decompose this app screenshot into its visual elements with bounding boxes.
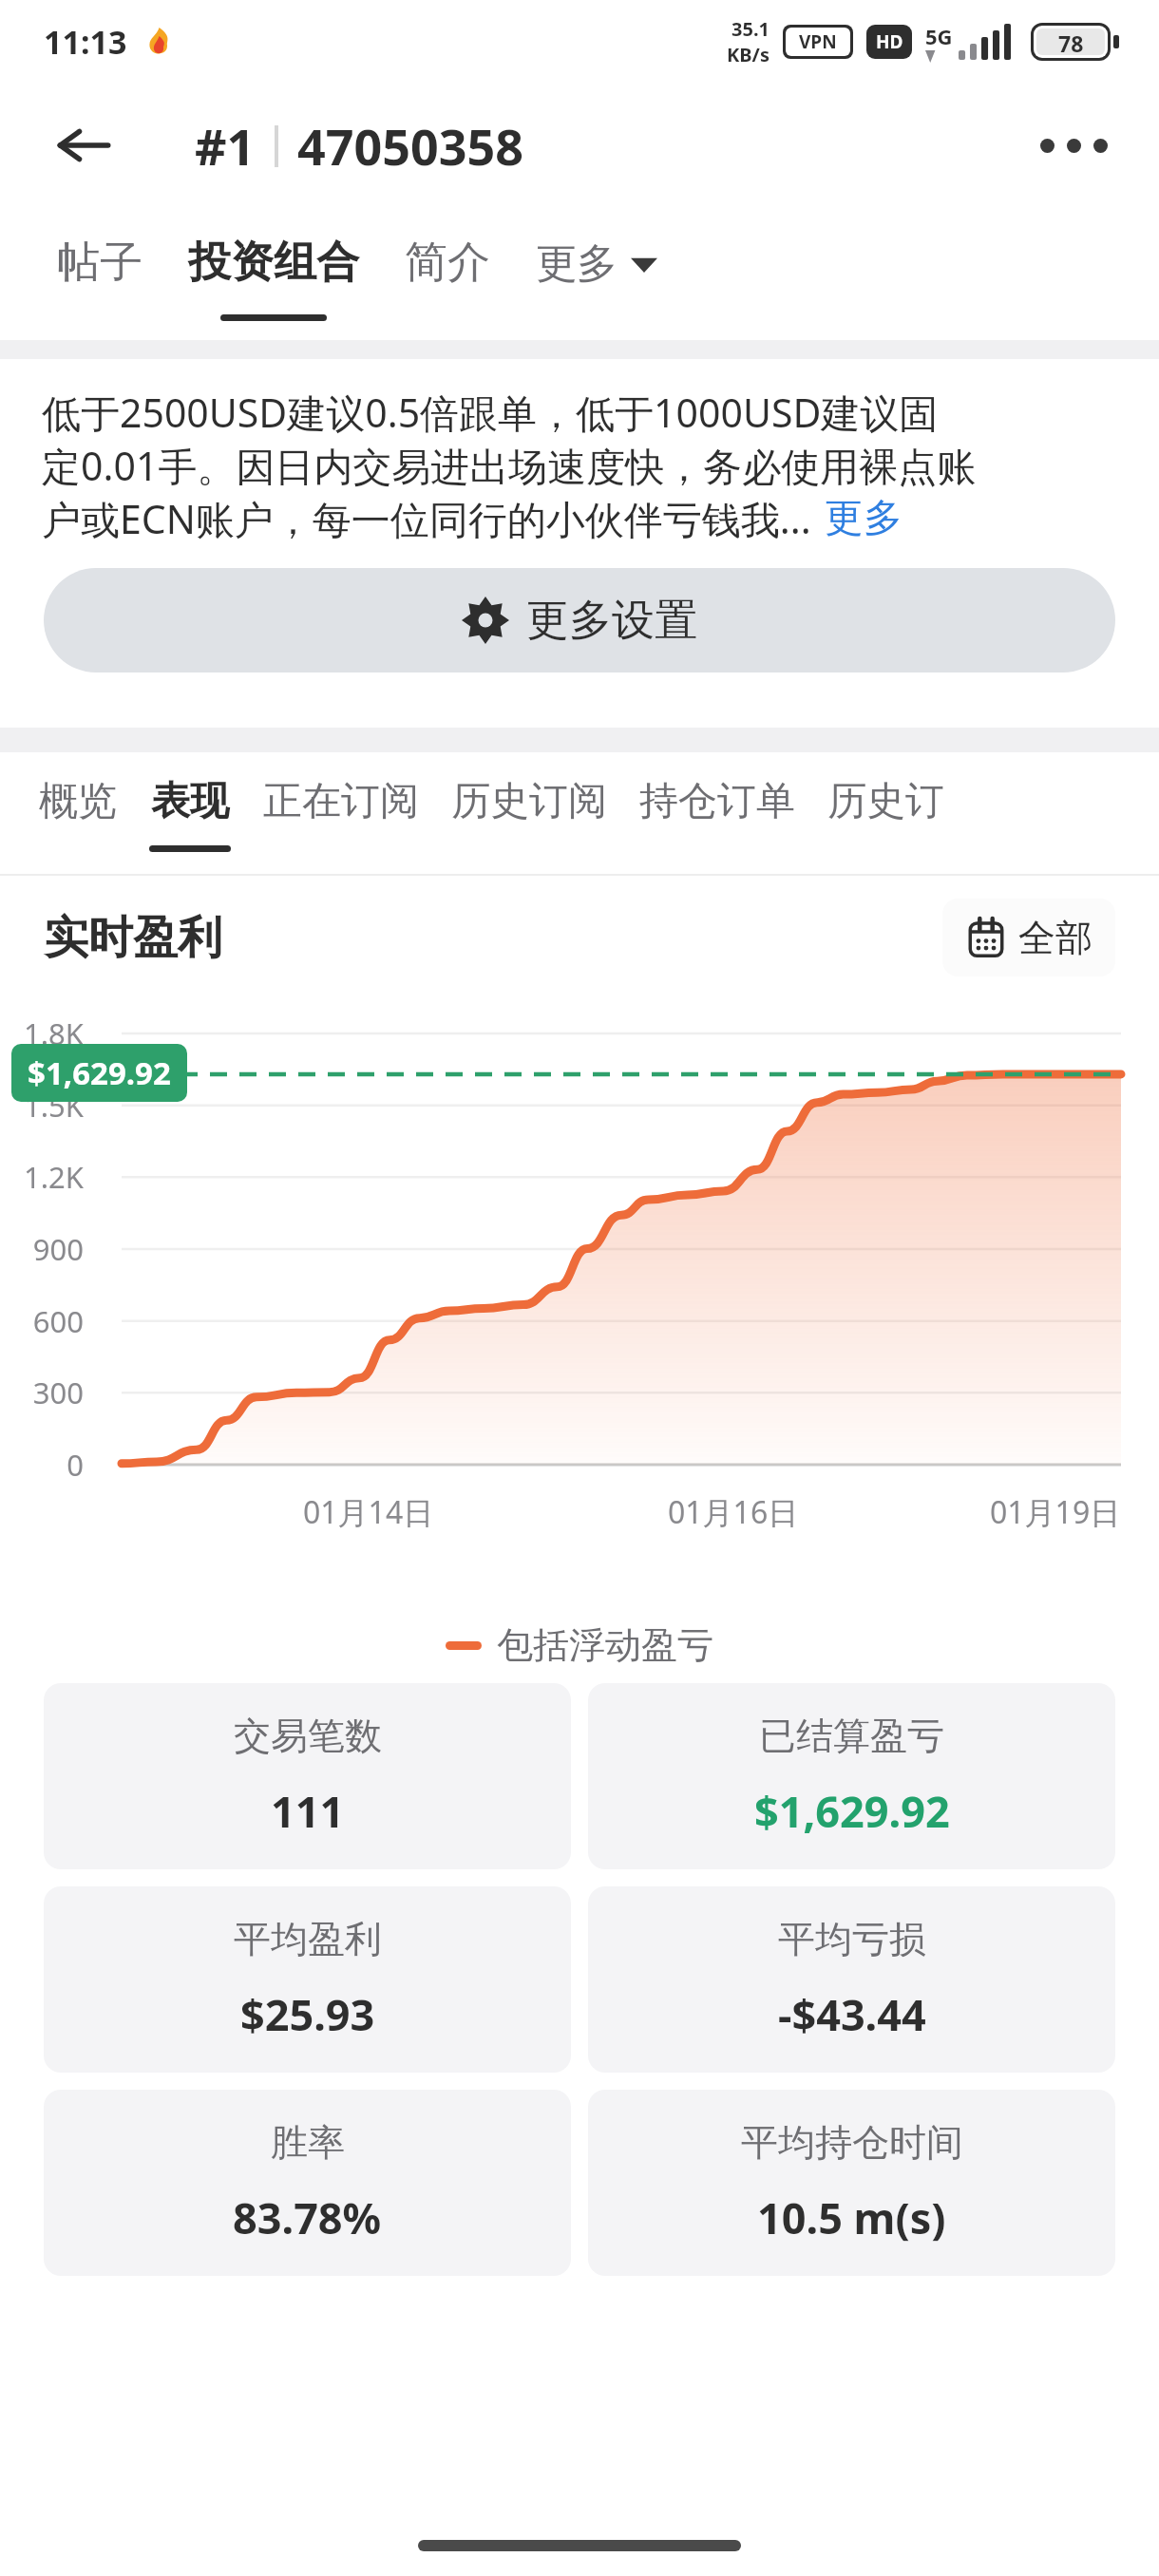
button[interactable]: 全部 xyxy=(942,899,1115,976)
staticText: 全部 xyxy=(1018,915,1092,961)
staticText: 111 xyxy=(271,1782,345,1840)
staticText: 概览 xyxy=(39,777,117,826)
staticText: -$43.44 xyxy=(778,1985,926,2043)
staticText: 历史订阅 xyxy=(451,777,607,826)
staticText: 低于2500USD建议0.5倍跟单，低于1000USD建议固 xyxy=(42,386,939,439)
staticText: 平均持仓时间 xyxy=(741,2119,963,2166)
staticText: 78 xyxy=(1058,28,1084,55)
staticText: 83.78% xyxy=(233,2188,382,2246)
staticText: 持仓订单 xyxy=(639,777,795,826)
staticText: 600 xyxy=(0,1301,84,1341)
staticText: 47050358 xyxy=(297,112,523,180)
button[interactable]: 平均亏损 xyxy=(588,1886,1115,2073)
staticText: 更多 xyxy=(825,494,902,543)
button[interactable]: 平均持仓时间 xyxy=(588,2090,1115,2276)
staticText: KB/s xyxy=(727,42,769,67)
staticText: 01月14日 xyxy=(303,1491,434,1533)
staticText: 10.5 m(s) xyxy=(757,2188,946,2246)
staticText: 0 xyxy=(0,1445,84,1485)
button[interactable]: 帖子 xyxy=(34,207,165,340)
staticText: 01月19日 xyxy=(990,1491,1121,1533)
button[interactable]: 历史订阅 xyxy=(435,752,623,874)
staticText: 更多设置 xyxy=(526,594,697,648)
staticText: 历史订 xyxy=(827,777,944,826)
staticText: 已结算盈亏 xyxy=(759,1713,944,1759)
button[interactable]: 已结算盈亏 xyxy=(588,1683,1115,1869)
staticText: 平均亏损 xyxy=(778,1916,926,1962)
staticText: 平均盈利 xyxy=(234,1916,382,1962)
button[interactable]: 更多设置 xyxy=(44,568,1115,672)
staticText: 5G xyxy=(925,22,953,50)
staticText: 胜率 xyxy=(271,2119,345,2166)
button[interactable]: 表现 xyxy=(133,752,247,874)
button[interactable]: 简介 xyxy=(382,207,513,340)
staticText: 01月16日 xyxy=(668,1491,799,1533)
staticText: 35.1 xyxy=(731,16,769,42)
button[interactable]: 持仓订单 xyxy=(623,752,811,874)
staticText: 11:13 xyxy=(44,20,127,64)
staticText: 1.2K xyxy=(0,1157,84,1197)
staticText: 投资组合 xyxy=(188,236,359,290)
staticText: 交易笔数 xyxy=(234,1713,382,1759)
button[interactable]: 概览 xyxy=(23,752,133,874)
button[interactable]: 正在订阅 xyxy=(247,752,435,874)
button[interactable]: 历史订 xyxy=(811,752,960,874)
staticText: 正在订阅 xyxy=(263,777,419,826)
staticText: 300 xyxy=(0,1373,84,1412)
staticText: 定0.01手。因日内交易进出场速度快，务必使用裸点账 xyxy=(42,439,977,492)
staticText: 900 xyxy=(0,1229,84,1269)
button[interactable]: Back xyxy=(44,105,123,185)
staticText: HD xyxy=(876,29,903,54)
staticText: 户或ECN账户，每一位同行的小伙伴亏钱我... xyxy=(42,492,811,545)
staticText: 实时盈利 xyxy=(44,910,222,966)
staticText: VPN xyxy=(799,29,837,54)
staticText: 1.8K xyxy=(0,1013,84,1053)
staticText: 包括浮动盈亏 xyxy=(497,1622,713,1668)
staticText: $1,629.92 xyxy=(28,1051,171,1094)
staticText: 简介 xyxy=(405,236,490,290)
button[interactable]: 交易笔数 xyxy=(44,1683,571,1869)
button[interactable]: 更多 xyxy=(825,494,902,543)
staticText: #1 xyxy=(195,112,256,180)
staticText: 1.5K xyxy=(0,1086,84,1126)
button[interactable]: 投资组合 xyxy=(165,207,382,340)
staticText: $25.93 xyxy=(240,1985,375,2043)
button[interactable]: 平均盈利 xyxy=(44,1886,571,2073)
button[interactable]: 胜率 xyxy=(44,2090,571,2276)
staticText: 表现 xyxy=(151,777,229,826)
staticText: 更多 xyxy=(536,238,617,290)
staticText: $1,629.92 xyxy=(754,1782,950,1840)
button[interactable]: 更多 xyxy=(513,207,680,321)
staticText: 帖子 xyxy=(57,236,142,290)
button[interactable]: More options xyxy=(1026,98,1121,193)
